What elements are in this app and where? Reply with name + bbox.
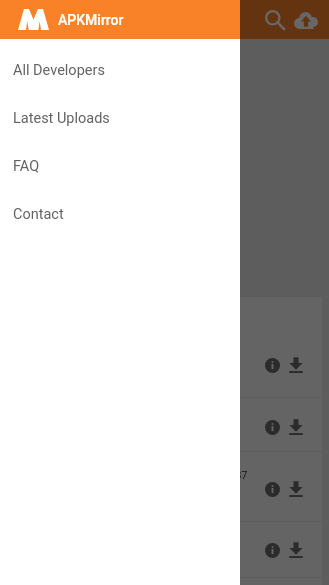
staticText: APKMirror [58, 12, 124, 28]
button[interactable]: Download [284, 415, 308, 439]
staticText: Latest Uploads [13, 110, 110, 127]
button[interactable]: Download [284, 477, 308, 501]
staticText: Samsung Experience Home 14.0.00.87 beta:… [58, 469, 254, 495]
button[interactable]: Gboard 14.3.05 [7, 578, 322, 585]
button[interactable]: Download [284, 353, 308, 377]
staticText: APKMirror [58, 12, 124, 28]
button[interactable] [0, 0, 329, 585]
button[interactable]: FAQ [0, 142, 240, 190]
button[interactable]: App info [260, 538, 284, 562]
button[interactable]: Contact [0, 190, 240, 238]
button[interactable]: Google Play services 24.26.32 [7, 297, 322, 397]
staticText: FAQ [13, 158, 40, 175]
button[interactable]: App info [260, 477, 284, 501]
button[interactable]: Android Auto 12.4.64 [7, 522, 322, 577]
button[interactable]: All Developers [0, 46, 240, 94]
button[interactable]: Download [284, 538, 308, 562]
button[interactable]: App info [260, 415, 284, 439]
button[interactable]: App info [260, 353, 284, 377]
button[interactable]: Upload APK [290, 0, 321, 39]
button[interactable]: Search [259, 0, 290, 39]
staticText: All Developers [13, 62, 105, 79]
button[interactable]: Latest Uploads [0, 94, 240, 142]
button[interactable]: Samsung Experience Home 14.0.00.87 beta:… [7, 452, 322, 521]
staticText: Contact [13, 206, 64, 223]
button[interactable]: Instagram 340.0.0.21 [7, 398, 322, 451]
